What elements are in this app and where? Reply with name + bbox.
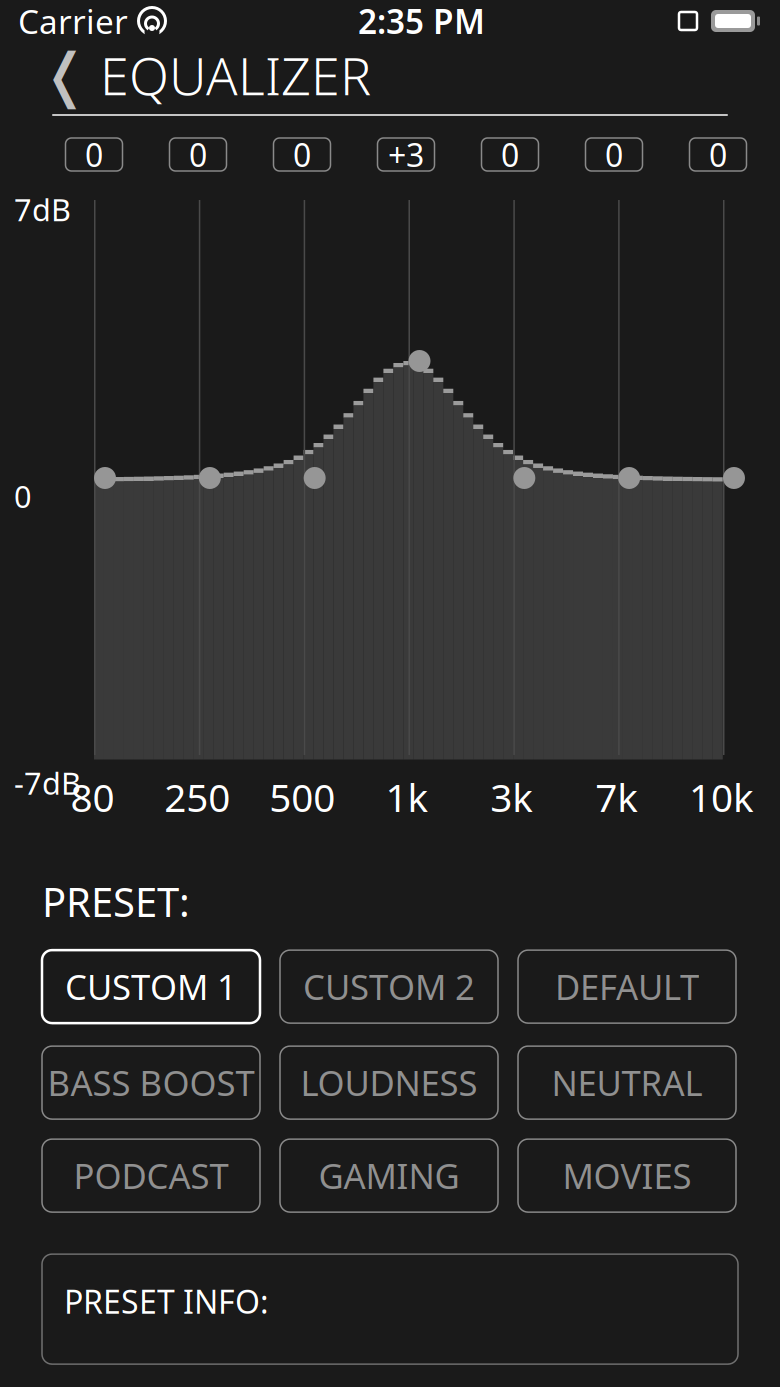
button[interactable]: PODCAST [42, 1139, 260, 1212]
staticText: 0 [293, 133, 311, 176]
button[interactable]: 0 [169, 138, 226, 171]
staticText: 7dB [14, 189, 71, 230]
button[interactable]: 0 [689, 138, 746, 171]
button[interactable]: NEUTRAL [518, 1046, 736, 1119]
staticText: LOUDNESS [300, 1060, 477, 1106]
button[interactable]: 0 [585, 138, 642, 171]
button[interactable]: 0 [65, 138, 122, 171]
button[interactable]: CUSTOM 2 [280, 950, 498, 1023]
staticText: EQUALIZER [100, 40, 371, 110]
staticText: MOVIES [562, 1153, 691, 1199]
staticText: +3 [388, 133, 424, 176]
staticText: ❬ [40, 42, 89, 108]
button[interactable]: BASS BOOST [42, 1046, 260, 1119]
staticText: PRESET: [42, 875, 190, 928]
staticText: PODCAST [73, 1153, 228, 1199]
staticText: GAMING [318, 1153, 459, 1199]
button[interactable]: MOVIES [518, 1139, 736, 1212]
staticText: 7k [595, 771, 638, 823]
staticText: 2:35 PM [358, 0, 485, 43]
staticText: 0 [14, 476, 32, 516]
staticText: CUSTOM 1 [65, 964, 237, 1010]
button[interactable]: +3 [377, 138, 434, 171]
staticText: 0 [709, 133, 727, 176]
staticText: PRESET INFO: [64, 1280, 269, 1323]
button[interactable]: 0 [273, 138, 330, 171]
staticText: BASS BOOST [47, 1060, 254, 1106]
staticText: 500 [269, 771, 335, 823]
staticText: 3k [490, 771, 533, 823]
button[interactable]: CUSTOM 1 [42, 950, 260, 1023]
staticText: 10k [689, 771, 754, 823]
button[interactable]: LOUDNESS [280, 1046, 498, 1119]
staticText: Carrier [18, 0, 128, 43]
staticText: 250 [164, 771, 230, 823]
staticText: 80 [70, 771, 114, 823]
staticText: CUSTOM 2 [303, 964, 475, 1010]
staticText: DEFAULT [555, 964, 699, 1010]
staticText: 0 [85, 133, 103, 176]
staticText: NEUTRAL [551, 1060, 702, 1106]
button[interactable]: 0 [481, 138, 538, 171]
button[interactable]: DEFAULT [518, 950, 736, 1023]
staticText: -7dB [14, 762, 81, 803]
button[interactable]: Back [42, 45, 88, 105]
staticText: 0 [605, 133, 623, 176]
staticText: 0 [189, 133, 207, 176]
button[interactable]: GAMING [280, 1139, 498, 1212]
staticText: 0 [501, 133, 519, 176]
staticText: 1k [385, 771, 428, 823]
